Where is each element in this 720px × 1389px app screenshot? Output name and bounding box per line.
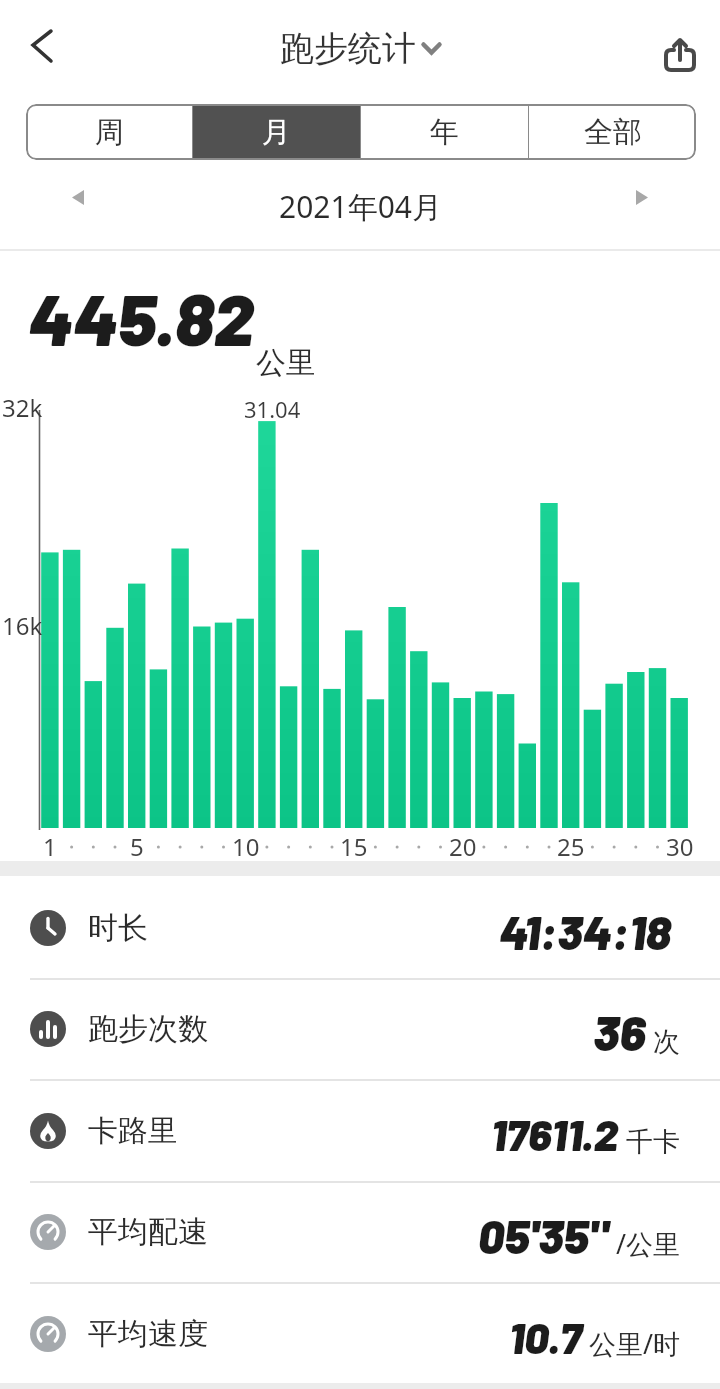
staticText: 平均速度: [88, 1315, 208, 1353]
staticText: 跑步次数: [88, 1010, 208, 1048]
staticText: 月: [262, 114, 291, 151]
staticText: /公里: [609, 1225, 681, 1262]
button[interactable]: 年: [361, 104, 528, 160]
staticText: 卡路里: [88, 1112, 178, 1150]
button[interactable]: 周: [26, 104, 192, 160]
staticText: 36: [593, 1002, 646, 1061]
button[interactable]: 跑步次数: [0, 978, 720, 1079]
button[interactable]: [652, 27, 708, 83]
staticText: 20: [449, 830, 477, 863]
button[interactable]: 平均速度: [0, 1283, 720, 1384]
staticText: 10: [232, 830, 260, 863]
staticText: 5: [130, 830, 144, 863]
staticText: 25: [557, 830, 585, 863]
staticText: 32k: [2, 391, 43, 424]
staticText: 1: [43, 830, 57, 863]
staticText: 公里: [256, 344, 316, 382]
staticText: 30: [666, 830, 694, 863]
staticText: 41:34:18: [499, 903, 671, 959]
staticText: 千卡: [619, 1122, 681, 1159]
button[interactable]: [14, 18, 70, 74]
button[interactable]: 全部: [529, 104, 696, 160]
button[interactable]: 平均配速: [0, 1181, 720, 1282]
staticText: 周: [95, 114, 124, 151]
staticText: 15: [340, 830, 368, 863]
button[interactable]: 月: [193, 104, 360, 160]
button[interactable]: 卡路里: [0, 1080, 720, 1181]
staticText: 16k: [2, 609, 43, 642]
staticText: 公里/时: [582, 1325, 681, 1362]
staticText: 平均配速: [88, 1213, 208, 1251]
staticText: 时长: [88, 909, 148, 947]
button[interactable]: [58, 177, 98, 217]
staticText: 次: [646, 1022, 681, 1059]
staticText: 05'35": [478, 1207, 609, 1263]
staticText: 31.04: [244, 394, 301, 424]
staticText: 10.7: [509, 1310, 582, 1363]
staticText: 445.82: [28, 274, 254, 360]
staticText: 跑步统计: [280, 27, 416, 70]
button[interactable]: 跑步统计: [280, 27, 441, 70]
staticText: 17611.2: [491, 1107, 619, 1160]
button[interactable]: [622, 177, 662, 217]
staticText: 全部: [584, 114, 642, 151]
button[interactable]: 2021年04月: [279, 186, 442, 227]
button[interactable]: 时长: [0, 877, 720, 978]
staticText: 年: [430, 114, 459, 151]
